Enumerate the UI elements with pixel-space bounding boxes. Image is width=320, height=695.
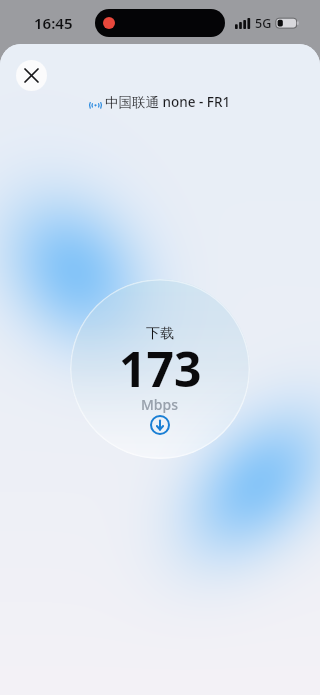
button[interactable]: Close [16,60,47,91]
button[interactable]: 中国联通 none - FR1 [0,92,320,112]
staticText: 173 [119,336,202,401]
staticText: 下载 [146,325,174,343]
staticText: 16:45 [34,13,73,33]
staticText: 5G [255,15,272,32]
staticText: 中国联通 none - FR1 [105,93,231,111]
button[interactable]: 下载 [70,279,250,459]
staticText: Mbps [141,395,179,414]
